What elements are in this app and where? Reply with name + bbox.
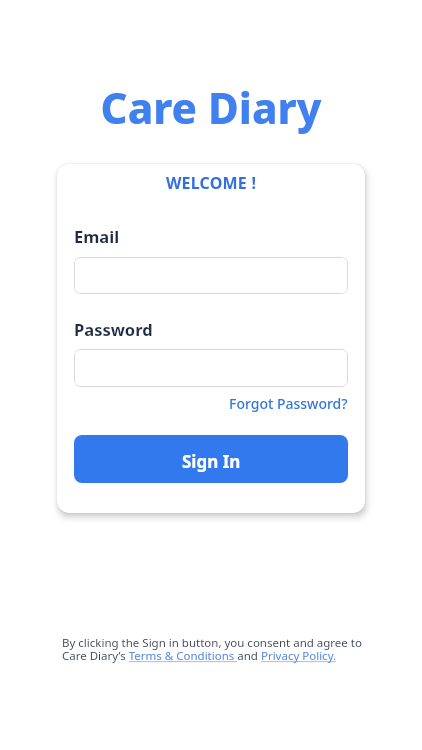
button[interactable]: Sign In <box>74 435 348 483</box>
button[interactable] <box>74 257 348 294</box>
staticText: WELCOME ! <box>74 172 348 194</box>
staticText: Password <box>74 318 153 340</box>
button[interactable] <box>74 349 348 387</box>
staticText: Sign In <box>182 450 241 473</box>
staticText: Forgot Password? <box>229 394 348 413</box>
staticText: Email <box>74 225 120 247</box>
button[interactable]: Forgot Password? <box>229 394 348 413</box>
staticText: By clicking the Sign in button, you cons… <box>62 635 362 664</box>
button[interactable]: By clicking the Sign in button, you cons… <box>62 635 362 664</box>
staticText: Care Diary <box>0 79 422 136</box>
